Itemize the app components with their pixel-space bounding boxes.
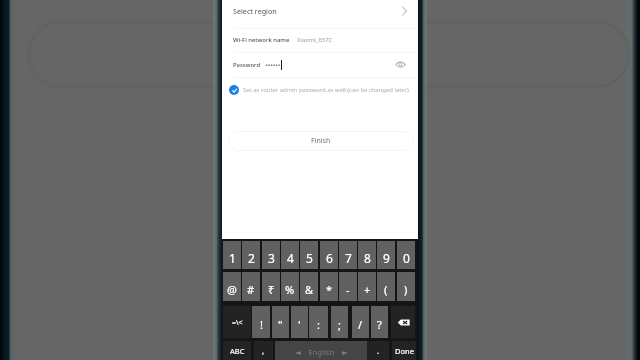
button[interactable]: Password [222, 55, 418, 74]
button[interactable]: % [281, 272, 299, 301]
button[interactable]: ( [377, 272, 395, 301]
button[interactable]: Show password [394, 58, 407, 71]
button[interactable]: Backspace [391, 306, 415, 338]
button[interactable]: ' [291, 306, 308, 338]
staticText: =\< [232, 318, 243, 328]
button[interactable]: 2 [242, 241, 260, 269]
staticText: # [247, 282, 255, 297]
staticText: " [278, 317, 283, 332]
button[interactable]: * [320, 272, 338, 301]
staticText: : [317, 317, 320, 332]
button[interactable]: 1 [223, 241, 241, 269]
button[interactable]: Select region [222, 0, 418, 22]
staticText: 1 [229, 250, 236, 266]
staticText: / [358, 317, 363, 332]
button[interactable]: ₹ [262, 272, 280, 301]
staticText: 3 [268, 250, 275, 266]
staticText: Done [395, 346, 414, 356]
button[interactable]: , [254, 341, 273, 360]
button[interactable]: 4 [281, 241, 299, 269]
staticText: ' [298, 317, 301, 332]
button[interactable]: . [367, 341, 389, 360]
staticText: * [326, 282, 333, 297]
staticText: 2 [248, 250, 255, 266]
staticText: ; [338, 317, 341, 332]
staticText: & [305, 282, 314, 297]
button[interactable]: Set as router admin password as well (ca… [222, 83, 418, 97]
button[interactable]: + [358, 272, 376, 301]
button[interactable]: 0 [397, 241, 415, 269]
staticText: 9 [383, 250, 390, 266]
staticText: ◄ English ► [295, 347, 348, 357]
button[interactable]: ! [252, 306, 270, 338]
staticText: Xiaomi_657C [297, 36, 333, 44]
button[interactable]: 6 [320, 241, 338, 269]
button[interactable]: 3 [262, 241, 280, 269]
staticText: 0 [403, 250, 410, 266]
button[interactable]: 7 [339, 241, 357, 269]
staticText: % [285, 282, 295, 297]
staticText: 4 [287, 250, 294, 266]
staticText: ? [377, 317, 382, 332]
button[interactable]: 8 [358, 241, 376, 269]
staticText: + [364, 282, 371, 297]
staticText: Set as router admin password as well (ca… [243, 86, 409, 94]
button[interactable]: Wi-Fi network name [222, 30, 418, 49]
button[interactable]: / [352, 306, 369, 338]
button[interactable]: ? [371, 306, 388, 338]
staticText: 8 [364, 250, 371, 266]
button[interactable]: Done [392, 341, 416, 360]
staticText: Select region [233, 6, 277, 16]
staticText: Finish [311, 136, 331, 146]
staticText: ( [384, 282, 388, 297]
staticText: . [377, 345, 380, 356]
staticText: ! [260, 317, 263, 332]
other: Open [399, 5, 411, 17]
button[interactable]: 5 [300, 241, 318, 269]
button[interactable]: Finish [228, 131, 414, 151]
button[interactable]: & [300, 272, 318, 301]
staticText: - [346, 282, 350, 297]
staticText: ₹ [268, 282, 275, 297]
staticText: Wi-Fi network name [233, 36, 290, 44]
staticText: ABC [230, 346, 245, 356]
staticText: ) [404, 282, 408, 297]
staticText: 5 [306, 250, 313, 266]
button[interactable]: @ [223, 272, 241, 301]
button[interactable]: ABC [223, 341, 251, 360]
button[interactable]: 9 [377, 241, 395, 269]
staticText: 6 [326, 250, 333, 266]
staticText: @ [227, 282, 237, 297]
button[interactable]: ) [397, 272, 415, 301]
button[interactable]: ◄ English ► [275, 341, 367, 360]
button[interactable]: " [272, 306, 289, 338]
staticText: 7 [345, 250, 352, 266]
button[interactable]: ; [331, 306, 348, 338]
button[interactable]: # [242, 272, 260, 301]
button[interactable]: : [309, 306, 328, 338]
button[interactable]: =\< [223, 306, 251, 338]
button[interactable]: - [339, 272, 357, 301]
staticText: , [262, 345, 265, 356]
staticText: Password [233, 61, 261, 69]
